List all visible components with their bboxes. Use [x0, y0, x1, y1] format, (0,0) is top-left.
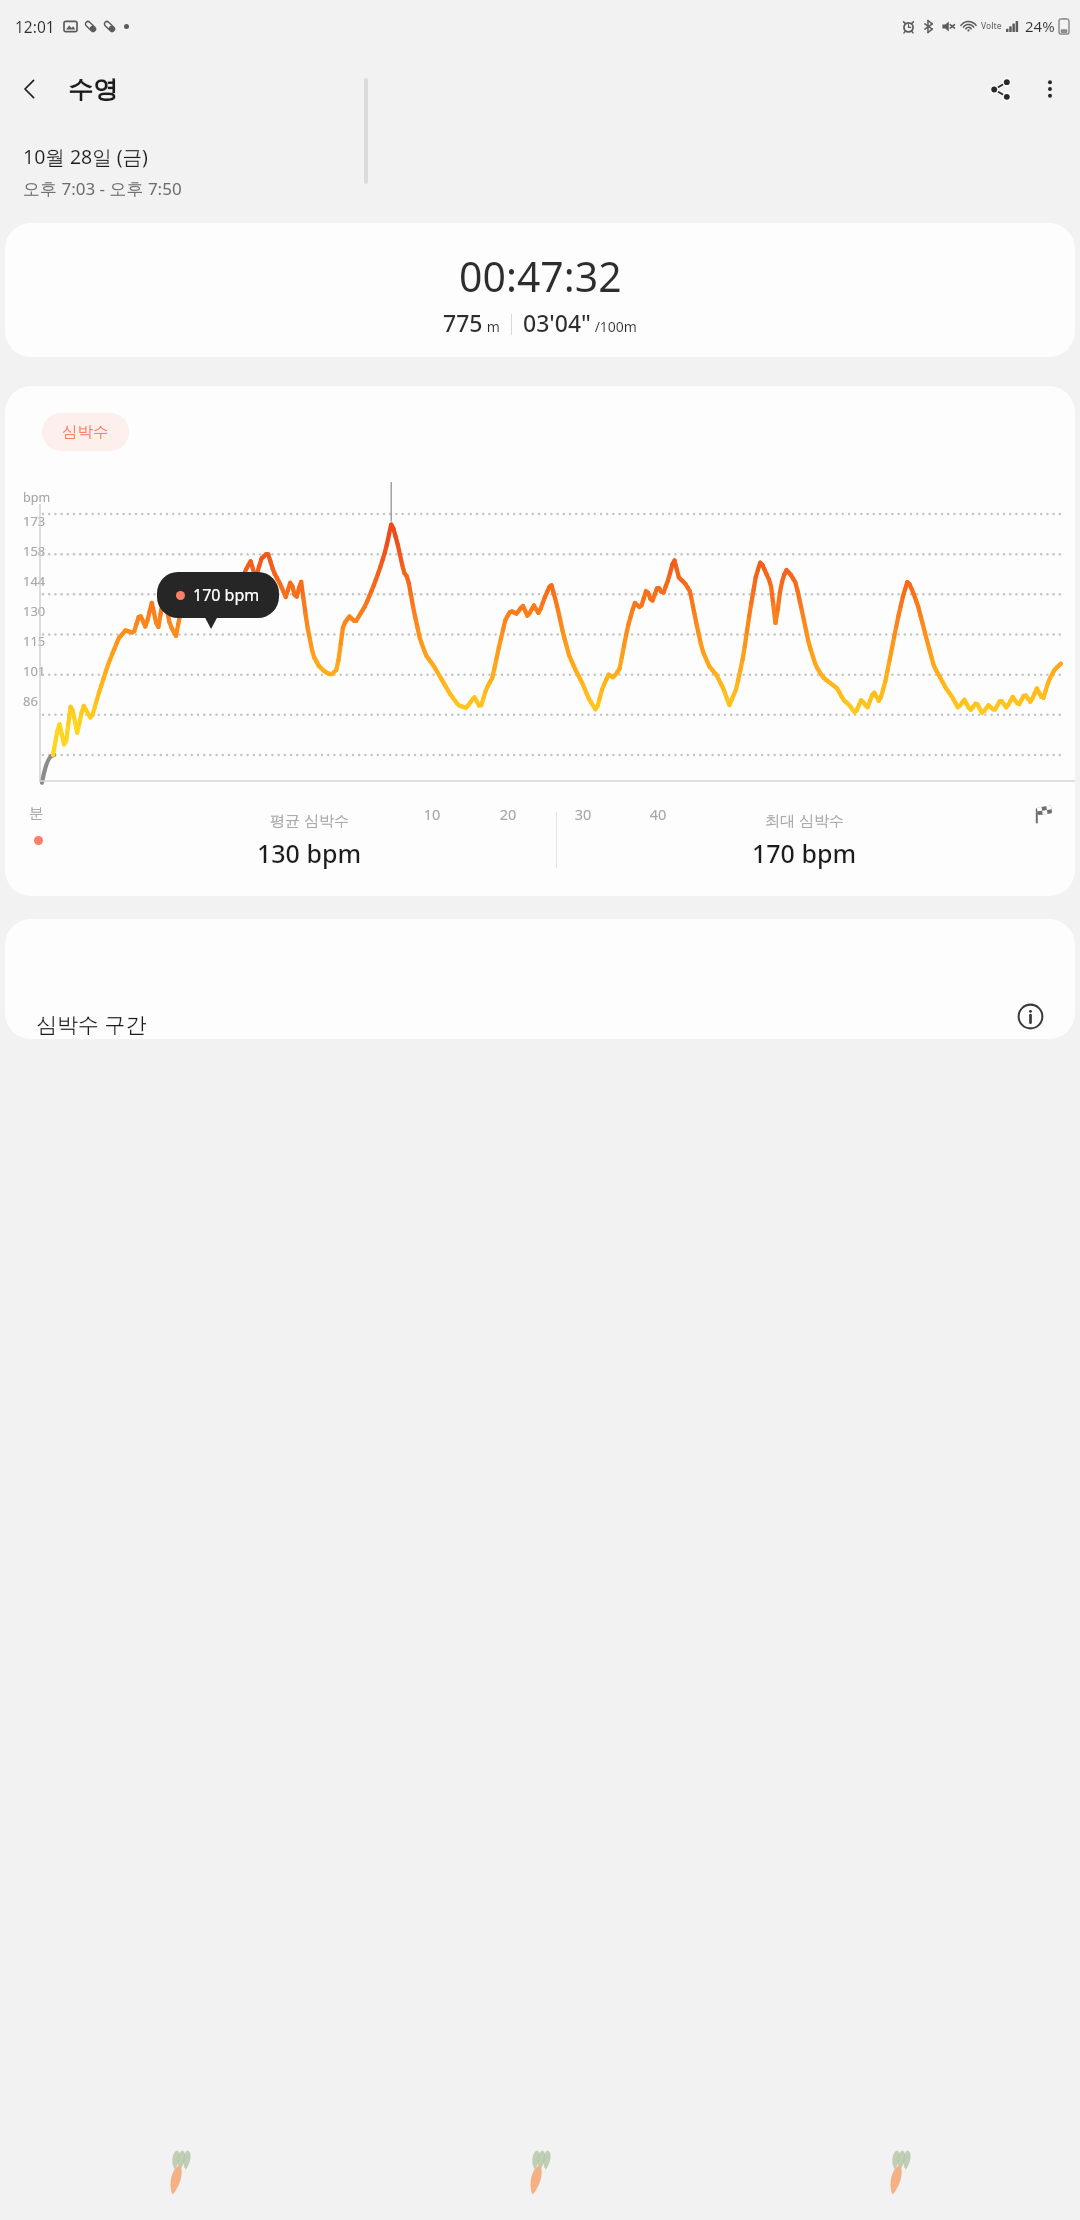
- staticText: 10: [5, 804, 967, 824]
- staticText: bpm: [23, 489, 51, 506]
- button[interactable]: 00:47:32: [5, 223, 1075, 357]
- staticText: 00:47:32: [459, 248, 622, 304]
- staticText: 115: [23, 632, 46, 650]
- button[interactable]: Info: [1009, 995, 1051, 1037]
- staticText: 20: [5, 804, 1043, 824]
- button[interactable]: 170 bpm: [157, 572, 279, 618]
- staticText: 101: [23, 662, 46, 680]
- staticText: 158: [23, 542, 46, 560]
- staticText: 170 bpm: [193, 584, 260, 606]
- staticText: 144: [23, 572, 46, 590]
- staticText: 86: [23, 692, 38, 710]
- staticText: 03'04": [523, 307, 591, 338]
- staticText: 24%: [1025, 16, 1055, 36]
- button[interactable]: Share: [976, 65, 1024, 113]
- staticText: 130: [23, 602, 46, 620]
- staticText: 수영: [68, 74, 118, 105]
- staticText: 775: [443, 307, 483, 338]
- staticText: 심박수 구간: [36, 1010, 147, 1039]
- button[interactable]: 심박수: [42, 413, 129, 451]
- button[interactable]: Recent apps: [0, 2124, 360, 2220]
- button[interactable]: More options: [1026, 65, 1074, 113]
- staticText: 30: [48, 804, 1075, 824]
- staticText: /100m: [591, 317, 637, 336]
- staticText: 40: [123, 804, 1075, 824]
- button[interactable]: Home: [360, 2124, 720, 2220]
- staticText: 최대 심박수: [765, 810, 844, 830]
- staticText: 10월 28일 (금): [23, 143, 148, 170]
- staticText: 12:01: [15, 16, 55, 37]
- staticText: 오후 7:03 - 오후 7:50: [23, 177, 182, 200]
- staticText: 173: [23, 512, 46, 530]
- button[interactable]: 심박수: [5, 386, 1075, 896]
- staticText: 분: [29, 804, 44, 822]
- button[interactable]: 심박수 구간: [5, 919, 1075, 1039]
- button[interactable]: Back: [720, 2124, 1080, 2220]
- staticText: 170 bpm: [752, 836, 857, 870]
- staticText: 심박수: [62, 422, 109, 442]
- staticText: 평균 심박수: [270, 810, 349, 830]
- staticText: Volte: [981, 20, 1002, 32]
- button[interactable]: Back: [6, 65, 54, 113]
- staticText: m: [483, 317, 500, 336]
- staticText: 130 bpm: [257, 836, 362, 870]
